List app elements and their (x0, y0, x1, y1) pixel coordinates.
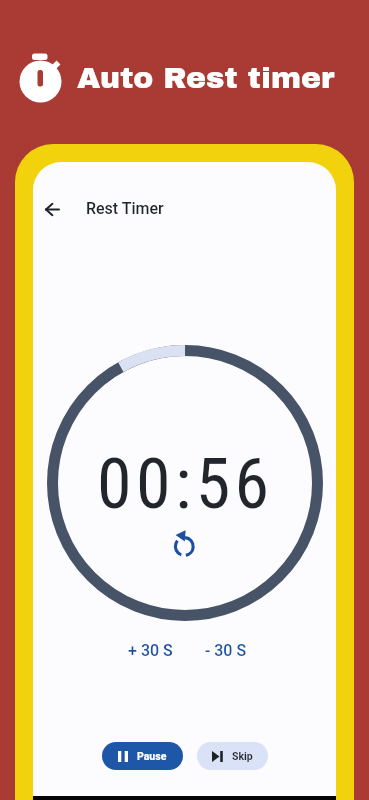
button[interactable] (169, 527, 200, 558)
staticText: Pause (137, 750, 167, 762)
staticText: Auto Rest timer (77, 62, 335, 95)
button[interactable] (32, 189, 72, 229)
button[interactable]: Pause (102, 742, 183, 770)
button[interactable]: - 30 S (186, 635, 266, 665)
button[interactable]: Skip (197, 742, 268, 770)
staticText: 00:56 (97, 443, 274, 525)
staticText: + 30 S (128, 641, 173, 660)
button[interactable]: + 30 S (110, 635, 190, 665)
staticText: - 30 S (205, 641, 247, 660)
staticText: Skip (232, 750, 253, 762)
staticText: Rest Timer (86, 199, 164, 218)
